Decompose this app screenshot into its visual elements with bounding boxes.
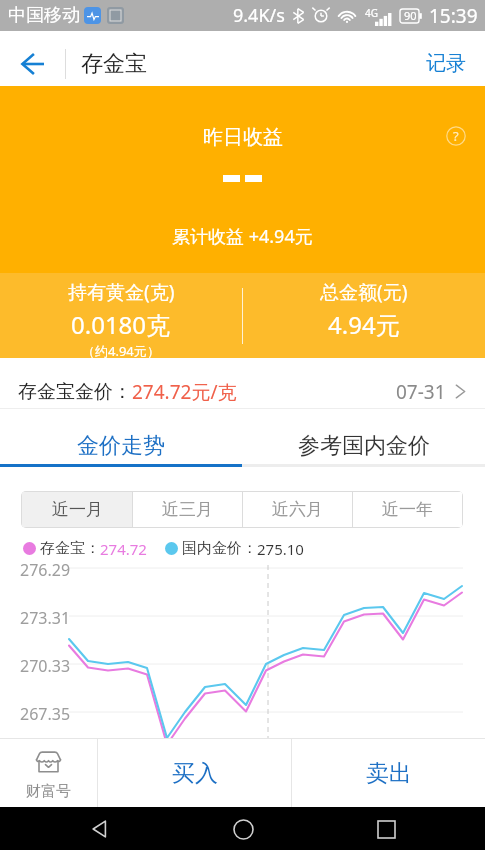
staticText: 近一年 <box>382 499 433 520</box>
staticText: ? <box>453 127 459 145</box>
button[interactable]: Help <box>446 126 466 146</box>
button[interactable]: 近六月 <box>243 492 352 527</box>
staticText: 昨日收益 <box>203 125 283 150</box>
staticText: 参考国内金价 <box>298 432 430 460</box>
staticText: 存金宝金价： <box>18 380 132 404</box>
button[interactable]: 近一年 <box>353 492 462 527</box>
staticText: 累计收益 +4.94元 <box>172 224 313 249</box>
button[interactable]: Back <box>0 41 65 86</box>
staticText: 近六月 <box>272 499 323 520</box>
staticText: 267.35 <box>20 703 71 725</box>
staticText: （约4.94元） <box>82 342 160 358</box>
staticText: 近一月 <box>52 499 103 520</box>
staticText: 中国移动 <box>8 4 80 27</box>
staticText: 近三月 <box>162 499 213 520</box>
button[interactable]: 卖出 <box>292 739 485 807</box>
staticText: 273.31 <box>20 607 71 629</box>
button[interactable]: 买入 <box>98 739 291 807</box>
staticText: 4G <box>365 6 378 20</box>
staticText: 4.94元 <box>328 308 400 341</box>
button[interactable]: 近一月 <box>22 492 132 527</box>
staticText: 金价走势 <box>77 432 165 460</box>
button[interactable]: 金价走势 <box>0 427 242 464</box>
staticText: 国内金价： <box>182 539 257 558</box>
staticText: 90 <box>404 8 417 23</box>
staticText: 9.4K/s <box>233 3 285 28</box>
button[interactable]: 近三月 <box>133 492 242 527</box>
staticText: 记录 <box>426 51 466 76</box>
button[interactable]: Back <box>79 808 121 850</box>
staticText: 卖出 <box>366 759 412 788</box>
staticText: 276.29 <box>20 559 71 581</box>
staticText: 存金宝 <box>81 50 147 78</box>
staticText: 存金宝： <box>40 539 100 558</box>
button[interactable]: 财富号 <box>0 739 97 807</box>
button[interactable]: Recents <box>365 808 407 850</box>
staticText: 274.72元/克 <box>132 379 237 405</box>
button[interactable]: 记录 <box>408 41 485 86</box>
staticText: 274.72 <box>100 539 147 559</box>
staticText: 270.33 <box>20 655 71 677</box>
staticText: 0.0180克 <box>71 308 171 341</box>
staticText: 总金额(元) <box>320 279 408 305</box>
button[interactable]: 参考国内金价 <box>242 427 485 464</box>
staticText: 持有黄金(克) <box>68 279 175 305</box>
button[interactable]: Home <box>222 808 264 850</box>
staticText: 买入 <box>172 759 218 788</box>
staticText: 15:39 <box>429 3 478 29</box>
button[interactable]: 存金宝金价： <box>0 358 485 408</box>
staticText: 财富号 <box>26 782 71 801</box>
staticText: 275.10 <box>257 539 304 559</box>
staticText: 07-31 <box>396 379 446 405</box>
